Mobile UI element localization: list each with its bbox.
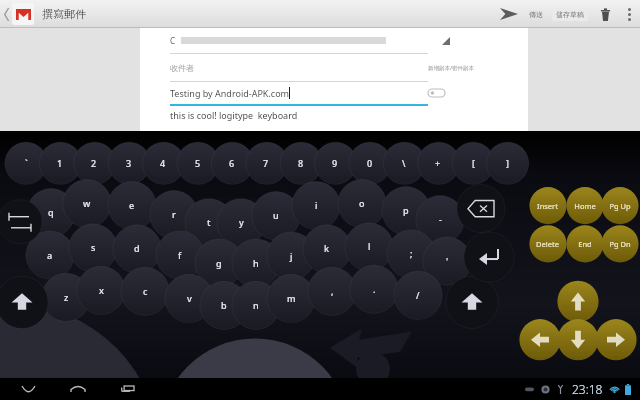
button[interactable]: Key l: [345, 222, 393, 270]
button[interactable]: Key f: [156, 231, 204, 279]
staticText: ]: [506, 157, 509, 169]
button[interactable]: Key 1: [39, 142, 81, 184]
button[interactable]: Key /: [394, 271, 442, 319]
button[interactable]: Key j: [267, 232, 315, 280]
button[interactable]: Testing by Android-APK.com: [140, 82, 428, 104]
button[interactable]: Key -: [416, 195, 464, 243]
button[interactable]: Delete: [529, 225, 566, 262]
button[interactable]: Key n: [232, 281, 280, 329]
button[interactable]: Key \: [383, 142, 425, 184]
button[interactable]: Key 2: [73, 142, 115, 184]
button[interactable]: Key 4: [142, 142, 184, 184]
button[interactable]: 傳送: [524, 10, 548, 19]
staticText: ': [446, 255, 449, 267]
staticText: 1: [57, 157, 63, 169]
staticText: s: [91, 241, 96, 253]
button[interactable]: Key o: [338, 179, 386, 227]
button[interactable]: Key 3: [108, 142, 150, 184]
button[interactable]: Key i: [292, 181, 340, 229]
button[interactable]: Home: [63, 378, 93, 400]
staticText: n: [253, 299, 259, 311]
staticText: y: [239, 216, 244, 228]
button[interactable]: Back: [14, 378, 43, 400]
staticText: 儲存草稿: [556, 10, 584, 19]
button[interactable]: Key h: [232, 239, 280, 287]
staticText: e: [129, 199, 135, 211]
button[interactable]: Key ]: [486, 142, 528, 184]
button[interactable]: Send: [494, 8, 524, 20]
button[interactable]: Key 9: [314, 142, 356, 184]
button[interactable]: Key c: [121, 267, 169, 315]
button[interactable]: Key q: [27, 188, 75, 236]
button[interactable]: End: [566, 225, 603, 262]
button[interactable]: Key 8: [280, 142, 322, 184]
button[interactable]: Home: [566, 187, 603, 224]
button[interactable]: 儲存草稿: [548, 8, 592, 21]
button[interactable]: Key .: [350, 265, 398, 313]
staticText: 3: [126, 157, 132, 169]
button[interactable]: Key p: [382, 186, 430, 234]
button[interactable]: Discard: [592, 7, 619, 21]
button[interactable]: More options: [619, 8, 640, 21]
staticText: 8: [298, 157, 304, 169]
button[interactable]: Down: [557, 319, 598, 360]
staticText: v: [187, 292, 192, 304]
button[interactable]: Key [: [452, 142, 494, 184]
staticText: ;: [410, 247, 413, 259]
staticText: 5: [195, 157, 201, 169]
button[interactable]: Key v: [165, 274, 213, 322]
button[interactable]: Key `: [5, 142, 47, 184]
button[interactable]: Key ,: [308, 267, 356, 315]
button[interactable]: Key e: [108, 181, 156, 229]
staticText: Delete: [536, 239, 559, 249]
button[interactable]: Key d: [113, 224, 161, 272]
button[interactable]: Key 0: [349, 142, 391, 184]
staticText: c: [143, 285, 148, 297]
staticText: 23:18: [572, 381, 603, 397]
button[interactable]: Key 5: [177, 142, 219, 184]
button[interactable]: Key r: [150, 190, 198, 238]
button[interactable]: Pg Up: [601, 187, 638, 224]
button[interactable]: Key g: [195, 239, 243, 287]
staticText: /: [416, 289, 420, 301]
staticText: End: [578, 239, 592, 249]
button[interactable]: Key y: [217, 198, 265, 246]
staticText: 0: [367, 157, 373, 169]
button[interactable]: Left: [519, 319, 560, 360]
button[interactable]: 新增副本/密件副本: [428, 64, 475, 72]
button[interactable]: Key 6: [211, 142, 253, 184]
staticText: o: [359, 197, 365, 209]
staticText: w: [83, 197, 91, 209]
button[interactable]: Key s: [69, 223, 117, 271]
button[interactable]: Key ': [423, 237, 471, 285]
button[interactable]: Insert: [529, 187, 566, 224]
button[interactable]: Key ;: [387, 229, 435, 277]
button[interactable]: Right: [595, 319, 636, 360]
button[interactable]: Key +: [417, 142, 459, 184]
button[interactable]: Navigate up: [0, 3, 34, 25]
button[interactable]: Key t: [185, 198, 233, 246]
button[interactable]: Key z: [42, 273, 90, 321]
staticText: `: [25, 157, 28, 169]
button[interactable]: Key 7: [245, 142, 287, 184]
button[interactable]: 收件者: [140, 54, 428, 81]
staticText: 6: [229, 157, 235, 169]
button[interactable]: C: [140, 28, 528, 53]
button[interactable]: Key a: [26, 231, 74, 279]
button[interactable]: Key x: [77, 266, 125, 314]
button[interactable]: Key m: [267, 274, 315, 322]
staticText: 撰寫郵件: [42, 7, 86, 21]
staticText: g: [216, 257, 222, 269]
button[interactable]: Up: [557, 280, 598, 321]
button[interactable]: Recent apps: [113, 378, 142, 400]
button[interactable]: Key b: [200, 281, 248, 329]
staticText: 收件者: [170, 63, 194, 73]
button[interactable]: Pg Dn: [601, 225, 638, 262]
button[interactable]: Attach file: [428, 89, 445, 97]
staticText: 傳送: [529, 10, 543, 19]
button[interactable]: Key w: [63, 179, 111, 227]
staticText: x: [99, 284, 104, 296]
button[interactable]: Key k: [303, 224, 351, 272]
button[interactable]: this is cool! logitype keyboard: [140, 109, 528, 131]
button[interactable]: Key u: [252, 191, 300, 239]
